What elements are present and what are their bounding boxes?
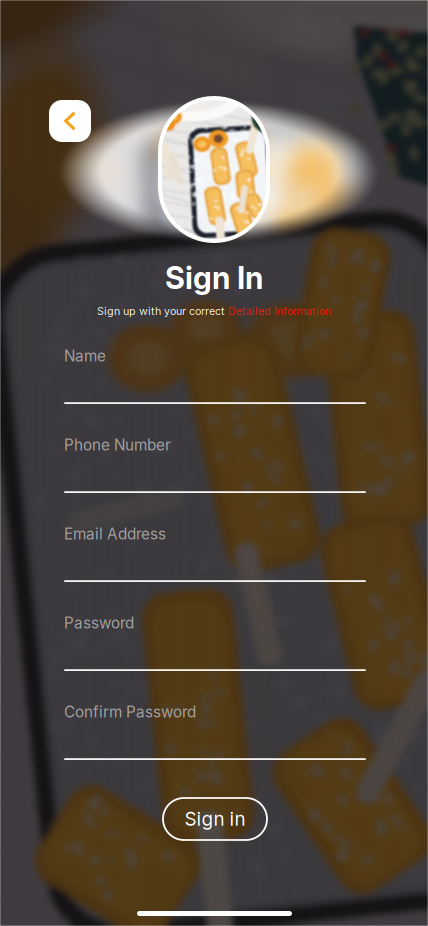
staticText: Name	[64, 347, 106, 365]
staticText: Confirm Password	[64, 703, 196, 721]
staticText: Password	[64, 614, 134, 632]
image	[160, 98, 268, 241]
staticText: Sign In	[165, 260, 263, 296]
button[interactable]: Sign in	[163, 798, 267, 840]
staticText: Sign up with your correct	[97, 304, 228, 317]
staticText: Detailed Information	[228, 304, 331, 317]
image	[0, 0, 428, 926]
staticText: Phone Number	[64, 436, 171, 454]
staticText: Sign in	[184, 808, 245, 830]
staticText: Email Address	[64, 525, 166, 543]
button[interactable]: Back	[49, 100, 91, 142]
